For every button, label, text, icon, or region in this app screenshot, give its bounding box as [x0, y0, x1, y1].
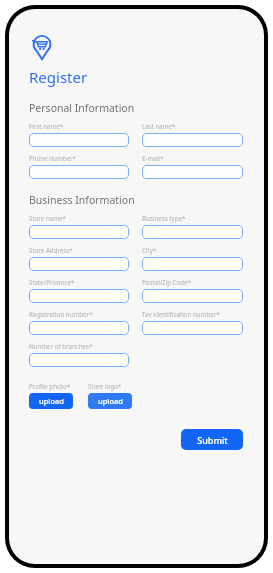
button[interactable]: Submit: [181, 429, 243, 450]
staticText: Profile photo*: [29, 382, 71, 390]
staticText: First name*: [29, 122, 64, 130]
staticText: Business Information: [29, 193, 135, 207]
staticText: upload: [98, 396, 123, 406]
button[interactable]: [29, 353, 129, 367]
staticText: Store Address*: [29, 246, 73, 254]
staticText: Store logo*: [88, 382, 122, 390]
button[interactable]: [29, 289, 129, 303]
staticText: Personal Information: [29, 101, 135, 115]
button[interactable]: [142, 133, 243, 147]
staticText: E-mail*: [142, 154, 164, 162]
button[interactable]: [29, 165, 129, 179]
button[interactable]: [29, 225, 129, 239]
staticText: Last name*: [142, 122, 176, 130]
button[interactable]: [29, 257, 129, 271]
button[interactable]: [142, 321, 243, 335]
button[interactable]: [142, 257, 243, 271]
staticText: Submit: [197, 434, 228, 446]
staticText: Register: [29, 67, 88, 87]
staticText: Postal/Zip Code*: [142, 278, 191, 286]
staticText: City*: [142, 246, 157, 254]
staticText: upload: [39, 396, 64, 406]
button[interactable]: [142, 289, 243, 303]
button[interactable]: [142, 225, 243, 239]
button[interactable]: Upload store logo: [88, 393, 132, 409]
button[interactable]: [142, 165, 243, 179]
staticText: Store name*: [29, 214, 66, 222]
staticText: Registration number*: [29, 310, 93, 318]
button[interactable]: [29, 133, 129, 147]
staticText: State/Province*: [29, 278, 75, 286]
button[interactable]: [29, 321, 129, 335]
staticText: Tax identification number*: [142, 310, 220, 318]
staticText: Business type*: [142, 214, 186, 222]
other: App logo: [29, 35, 55, 61]
button[interactable]: Upload profile photo: [29, 393, 73, 409]
staticText: Number of branches*: [29, 342, 93, 350]
staticText: Phone number*: [29, 154, 76, 162]
